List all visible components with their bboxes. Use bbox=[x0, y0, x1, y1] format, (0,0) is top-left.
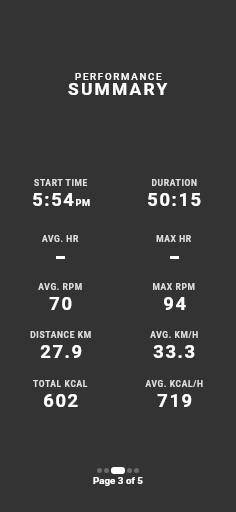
staticText: AVG. KM/H bbox=[150, 330, 199, 340]
button[interactable]: MAX RPM bbox=[117, 282, 231, 316]
staticText: PERFORMANCE bbox=[75, 71, 164, 82]
button[interactable]: DURATION bbox=[117, 178, 231, 212]
staticText: AVG. RPM bbox=[38, 282, 83, 292]
button[interactable]: AVG. KCAL/H bbox=[117, 379, 231, 413]
staticText: 27.9 bbox=[40, 341, 84, 363]
button[interactable]: Page 3 of 5 bbox=[93, 475, 143, 486]
button[interactable]: Go to page 5 bbox=[134, 468, 139, 473]
staticText: AVG. HR bbox=[42, 234, 79, 244]
button[interactable]: START TIME bbox=[4, 178, 117, 212]
staticText: DURATION bbox=[151, 178, 198, 188]
button[interactable]: AVG. KM/H bbox=[117, 330, 231, 364]
staticText: 33.3 bbox=[153, 341, 197, 363]
button[interactable]: DISTANCE KM bbox=[4, 330, 117, 364]
button[interactable]: Page 3, current page bbox=[111, 467, 125, 474]
staticText: 602 bbox=[43, 390, 80, 412]
button[interactable]: Go to page 1 bbox=[97, 468, 102, 473]
staticText: 70 bbox=[49, 293, 74, 315]
staticText: MAX RPM bbox=[152, 282, 196, 292]
staticText: 94 bbox=[163, 293, 188, 315]
staticText: 5:54PM bbox=[32, 189, 91, 211]
staticText: AVG. KCAL/H bbox=[145, 379, 204, 389]
button[interactable]: Go to page 4 bbox=[127, 468, 132, 473]
staticText: START TIME bbox=[34, 178, 88, 188]
staticText: MAX HR bbox=[156, 234, 192, 244]
button[interactable]: AVG. RPM bbox=[4, 282, 117, 316]
staticText: 50:15 bbox=[147, 189, 203, 211]
button[interactable]: TOTAL KCAL bbox=[4, 379, 117, 413]
staticText: DISTANCE KM bbox=[30, 330, 92, 340]
button[interactable]: AVG. HR bbox=[4, 234, 117, 268]
button[interactable]: MAX HR bbox=[117, 234, 231, 268]
button[interactable]: Go to page 2 bbox=[104, 468, 109, 473]
staticText: TOTAL KCAL bbox=[33, 379, 88, 389]
staticText: SUMMARY bbox=[68, 79, 170, 99]
staticText: 719 bbox=[157, 390, 194, 412]
